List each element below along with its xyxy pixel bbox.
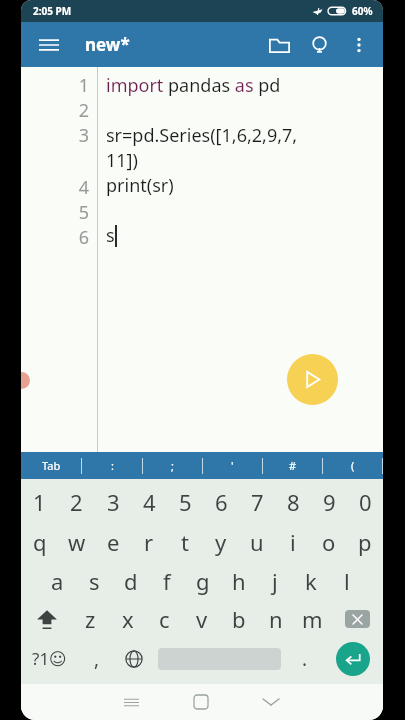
button[interactable]: Recent apps: [97, 684, 166, 720]
staticText: #: [289, 458, 297, 473]
button[interactable]: 6: [203, 482, 239, 522]
button[interactable]: More options: [339, 25, 379, 65]
staticText: print(sr): [106, 173, 174, 198]
button[interactable]: q: [21, 522, 58, 562]
staticText: z: [85, 604, 96, 634]
button[interactable]: #: [263, 452, 322, 479]
staticText: 5: [179, 487, 192, 517]
staticText: h: [232, 566, 246, 596]
button[interactable]: j: [257, 562, 293, 600]
button[interactable]: ;: [143, 452, 202, 479]
button[interactable]: 9: [311, 482, 347, 522]
staticText: s: [89, 566, 100, 596]
staticText: 4: [143, 487, 156, 517]
button[interactable]: Back: [236, 684, 306, 720]
staticText: i: [290, 527, 296, 557]
button[interactable]: Open folder: [259, 25, 299, 65]
button[interactable]: d: [113, 562, 149, 600]
button[interactable]: c: [146, 600, 183, 637]
button[interactable]: 7: [239, 482, 275, 522]
staticText: 0: [359, 487, 372, 517]
staticText: j: [272, 566, 278, 596]
staticText: new*: [85, 33, 130, 56]
button[interactable]: a: [39, 562, 76, 600]
staticText: 2: [70, 487, 83, 517]
button[interactable]: Menu: [29, 25, 69, 65]
button[interactable]: t: [167, 522, 203, 562]
staticText: 8: [287, 487, 300, 517]
button[interactable]: y: [203, 522, 239, 562]
button[interactable]: Selection handle: [21, 372, 30, 389]
button[interactable]: 4: [131, 482, 167, 522]
button[interactable]: (: [323, 452, 382, 479]
staticText: l: [344, 566, 350, 596]
button[interactable]: ,: [78, 637, 115, 680]
button[interactable]: p: [347, 522, 383, 562]
button[interactable]: f: [149, 562, 185, 600]
button[interactable]: r: [131, 522, 167, 562]
button[interactable]: Run: [287, 354, 338, 405]
button[interactable]: ?1☺: [21, 637, 78, 680]
button[interactable]: Shift: [21, 600, 72, 637]
button[interactable]: 5: [167, 482, 203, 522]
button[interactable]: Change language: [115, 637, 152, 680]
staticText: v: [196, 604, 208, 634]
staticText: (: [351, 458, 355, 473]
staticText: 6: [215, 487, 228, 517]
button[interactable]: .: [286, 637, 323, 680]
button[interactable]: Home: [166, 684, 236, 720]
button[interactable]: u: [239, 522, 275, 562]
staticText: x: [122, 604, 134, 634]
staticText: 7: [251, 487, 264, 517]
button[interactable]: l: [329, 562, 365, 600]
staticText: k: [305, 566, 317, 596]
button[interactable]: k: [293, 562, 329, 600]
button[interactable]: :: [82, 452, 142, 479]
button[interactable]: Backspace: [331, 600, 383, 637]
staticText: 4: [21, 175, 89, 200]
button[interactable]: 0: [347, 482, 383, 522]
staticText: f: [163, 566, 171, 596]
button[interactable]: 3: [95, 482, 131, 522]
staticText: 2:05 PM: [33, 4, 72, 18]
button[interactable]: Hint: [299, 25, 339, 65]
button[interactable]: 1: [21, 482, 58, 522]
button[interactable]: h: [221, 562, 257, 600]
staticText: w: [68, 527, 86, 557]
button[interactable]: z: [72, 600, 109, 637]
button[interactable]: w: [58, 522, 95, 562]
button[interactable]: 2: [58, 482, 95, 522]
staticText: b: [232, 604, 246, 634]
button[interactable]: 8: [275, 482, 311, 522]
button[interactable]: g: [185, 562, 221, 600]
staticText: u: [250, 527, 264, 557]
staticText: n: [269, 604, 283, 634]
staticText: t: [181, 527, 189, 557]
button[interactable]: ': [203, 452, 262, 479]
staticText: a: [51, 566, 64, 596]
staticText: c: [159, 604, 170, 634]
staticText: 2: [21, 98, 89, 123]
staticText: .: [302, 646, 308, 672]
button[interactable]: b: [220, 600, 257, 637]
staticText: m: [302, 604, 323, 634]
button[interactable]: e: [95, 522, 131, 562]
button[interactable]: s: [76, 562, 113, 600]
staticText: p: [358, 527, 372, 557]
button[interactable]: v: [183, 600, 220, 637]
staticText: q: [33, 527, 47, 557]
staticText: :: [111, 458, 114, 473]
staticText: d: [124, 566, 138, 596]
staticText: ;: [171, 458, 174, 473]
staticText: ,: [94, 646, 100, 672]
button[interactable]: i: [275, 522, 311, 562]
staticText: o: [322, 527, 336, 557]
button[interactable]: m: [294, 600, 331, 637]
button[interactable]: Enter: [323, 637, 383, 680]
button[interactable]: Space: [152, 637, 286, 680]
staticText: ': [231, 458, 234, 473]
button[interactable]: x: [109, 600, 146, 637]
button[interactable]: n: [257, 600, 294, 637]
button[interactable]: o: [311, 522, 347, 562]
button[interactable]: Tab: [21, 452, 81, 479]
